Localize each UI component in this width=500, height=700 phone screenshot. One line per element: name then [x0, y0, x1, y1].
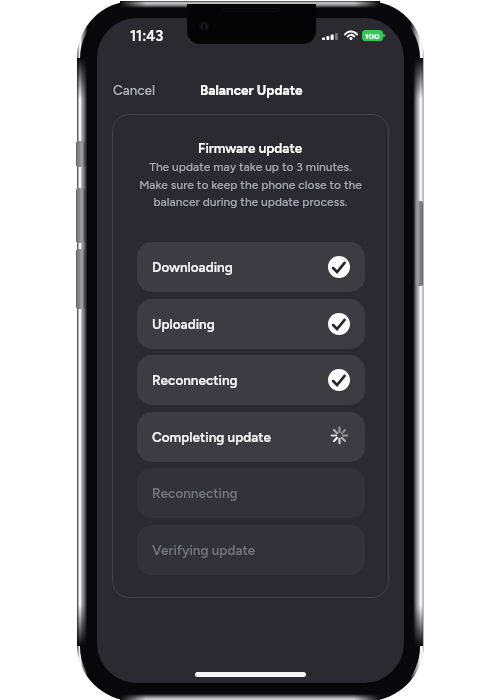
staticText: The update may take up to 3 minutes. Mak…: [122, 160, 379, 209]
button[interactable]: Uploading: [137, 299, 365, 349]
button[interactable]: Reconnecting: [137, 468, 365, 518]
other: Completed: [328, 369, 350, 391]
staticText: Reconnecting: [152, 372, 238, 388]
staticText: Reconnecting: [152, 485, 238, 501]
other: In progress: [330, 426, 349, 445]
staticText: 100: [365, 31, 380, 41]
staticText: Completing update: [152, 429, 271, 445]
staticText: 11:43: [130, 27, 164, 44]
staticText: Cancel: [113, 82, 156, 98]
other: Completed: [328, 313, 350, 335]
staticText: Balancer Update: [200, 82, 303, 98]
staticText: Uploading: [152, 316, 215, 332]
staticText: Verifying update: [152, 542, 256, 558]
button[interactable]: Downloading: [137, 242, 365, 292]
staticText: Firmware update: [198, 140, 303, 156]
other: Completed: [328, 256, 350, 278]
staticText: Downloading: [152, 259, 233, 275]
button[interactable]: Completing update: [137, 412, 365, 462]
button[interactable]: Reconnecting: [137, 355, 365, 405]
button[interactable]: Verifying update: [137, 525, 365, 575]
button[interactable]: Cancel: [105, 76, 164, 104]
